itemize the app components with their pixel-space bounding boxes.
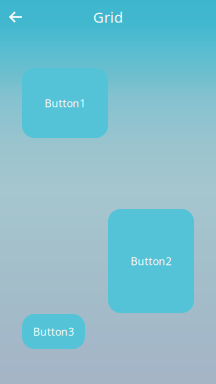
staticText: Grid [93, 7, 123, 27]
button[interactable]: Button2 [108, 209, 194, 313]
staticText: Button1 [44, 96, 85, 110]
staticText: Button3 [33, 324, 74, 339]
staticText: Button2 [130, 254, 171, 268]
button[interactable]: Back [1, 2, 31, 32]
button[interactable]: Button3 [22, 314, 85, 349]
button[interactable]: Button1 [22, 68, 108, 138]
